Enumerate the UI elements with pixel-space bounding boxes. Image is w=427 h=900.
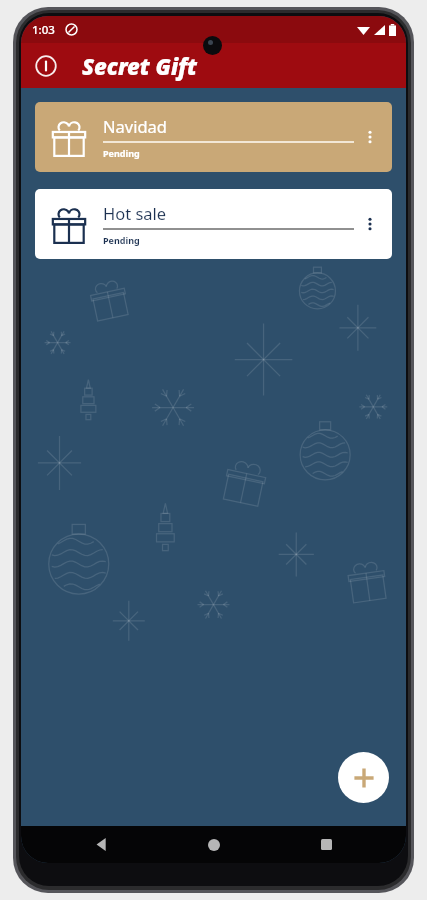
button[interactable]: Recent apps bbox=[306, 826, 346, 863]
staticText: Hot sale bbox=[103, 202, 167, 224]
button[interactable]: More options for Hot sale bbox=[354, 208, 386, 240]
button[interactable]: Add new gift exchange bbox=[338, 752, 389, 803]
staticText: Navidad bbox=[103, 115, 167, 137]
staticText: Pending bbox=[103, 147, 140, 159]
staticText: 1:03 bbox=[32, 22, 55, 38]
button[interactable]: Navidad bbox=[35, 102, 392, 172]
button[interactable]: Home bbox=[194, 826, 234, 863]
staticText: Pending bbox=[103, 234, 140, 246]
staticText: Secret Gift bbox=[82, 51, 198, 81]
button[interactable]: Hot sale bbox=[35, 189, 392, 259]
button[interactable]: Information bbox=[29, 49, 63, 83]
button[interactable]: Back bbox=[81, 826, 121, 863]
button[interactable]: More options for Navidad bbox=[354, 121, 386, 153]
